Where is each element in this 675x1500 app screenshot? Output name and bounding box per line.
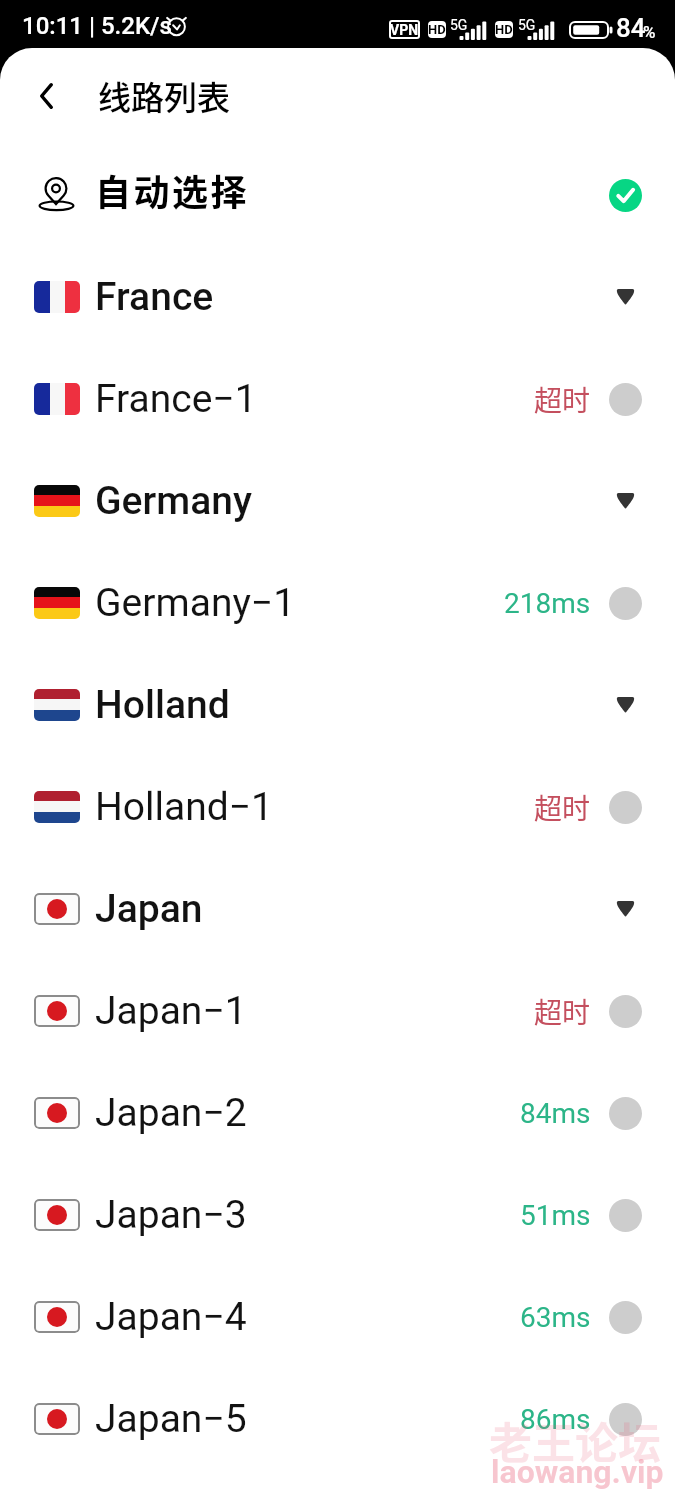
button[interactable]: France−1 [0, 348, 675, 450]
button[interactable]: Select Japan−3 [609, 1199, 642, 1232]
button[interactable]: Select Japan−5 [609, 1403, 642, 1436]
button[interactable]: Select Japan−4 [609, 1301, 642, 1334]
button[interactable]: Collapse France [603, 277, 647, 317]
staticText: 5G [518, 17, 536, 33]
staticText: Japan−2 [95, 1090, 247, 1136]
button[interactable]: France [0, 246, 675, 348]
staticText: Germany−1 [95, 580, 296, 626]
staticText: Japan [95, 886, 203, 932]
staticText: 超时 [534, 379, 591, 420]
staticText: 51ms [520, 1199, 591, 1232]
staticText: 超时 [534, 787, 591, 828]
button[interactable]: Japan−3 [0, 1164, 675, 1266]
button[interactable]: Select Germany−1 [609, 587, 642, 620]
staticText: Japan−4 [95, 1294, 247, 1340]
staticText: 线路列表 [98, 72, 230, 120]
button[interactable]: Holland−1 [0, 756, 675, 858]
staticText: % [643, 22, 656, 42]
staticText: Germany [95, 478, 252, 524]
button[interactable]: Collapse Germany [603, 481, 647, 521]
button[interactable]: Select France−1 [609, 383, 642, 416]
button[interactable]: Japan−1 [0, 960, 675, 1062]
staticText: 63ms [520, 1301, 591, 1334]
button[interactable]: Japan−2 [0, 1062, 675, 1164]
button[interactable]: Select Japan−2 [609, 1097, 642, 1130]
button[interactable]: Japan−4 [0, 1266, 675, 1368]
staticText: 老王论坛 [489, 1409, 661, 1471]
button[interactable]: Select Holland−1 [609, 791, 642, 824]
button[interactable]: Germany−1 [0, 552, 675, 654]
staticText: France [95, 274, 214, 320]
staticText: 84ms [520, 1097, 591, 1130]
staticText: 86ms [520, 1403, 591, 1436]
staticText: Japan−3 [95, 1192, 247, 1238]
staticText: Japan−5 [95, 1396, 247, 1442]
staticText: Holland [95, 682, 230, 728]
button[interactable]: Germany [0, 450, 675, 552]
staticText: 10:11 | 5.2K/s [22, 12, 172, 40]
staticText: HD [428, 22, 446, 37]
staticText: VPN [390, 22, 419, 38]
button[interactable]: Selected [609, 179, 642, 212]
button[interactable]: Collapse Holland [603, 685, 647, 725]
staticText: Holland−1 [95, 784, 273, 830]
button[interactable]: Collapse Japan [603, 889, 647, 929]
staticText: France−1 [95, 376, 257, 422]
button[interactable]: Select Japan−1 [609, 995, 642, 1028]
staticText: 自动选择 [95, 164, 250, 216]
button[interactable]: Japan−5 [0, 1368, 675, 1470]
staticText: Japan−1 [95, 988, 247, 1034]
button[interactable]: Japan [0, 858, 675, 960]
staticText: 218ms [504, 587, 591, 620]
staticText: 84 [616, 13, 646, 43]
staticText: HD [495, 22, 513, 37]
staticText: 超时 [534, 991, 591, 1032]
staticText: 5G [450, 17, 468, 33]
button[interactable]: Back [0, 48, 98, 144]
button[interactable]: 自动选择 [0, 144, 675, 246]
staticText: laowang.vip [491, 1453, 664, 1491]
button[interactable]: Holland [0, 654, 675, 756]
